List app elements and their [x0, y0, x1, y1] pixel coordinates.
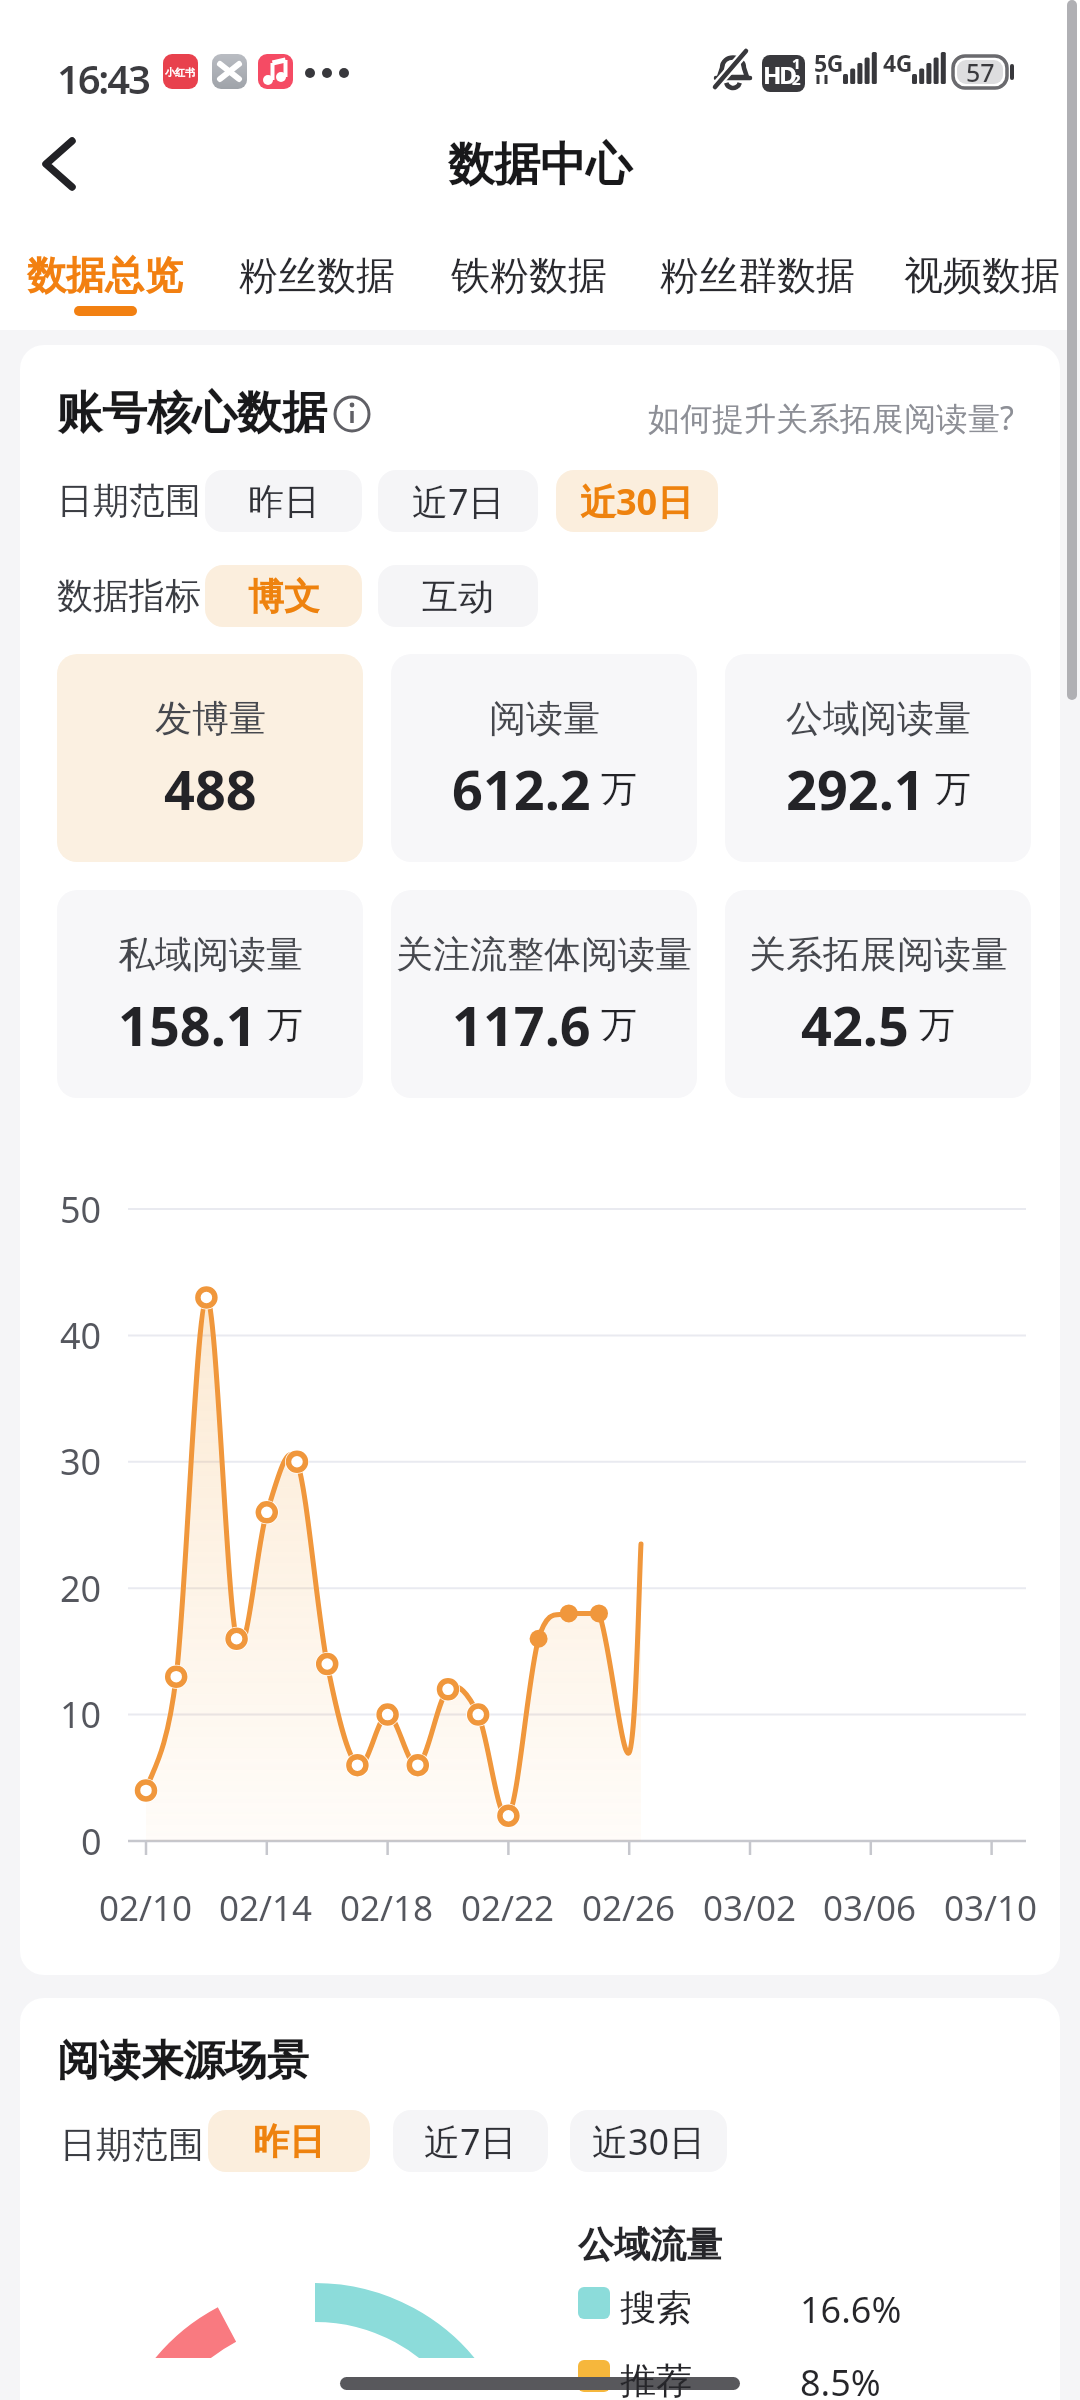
staticText: 粉丝数据 — [239, 251, 395, 300]
button[interactable]: 铁粉数据 — [444, 240, 614, 310]
staticText: 近30日 — [592, 2117, 706, 2166]
staticText: 488 — [164, 752, 257, 824]
staticText: 公域流量 — [578, 2222, 722, 2267]
staticText: 10 — [60, 1690, 102, 1738]
button[interactable]: 近30日 — [556, 470, 718, 532]
staticText: 阅读来源场景 — [57, 2035, 309, 2088]
staticText: 万 — [935, 766, 971, 811]
button[interactable]: 粉丝数据 — [232, 240, 402, 310]
button[interactable]: 关注流整体阅读量 — [391, 890, 697, 1098]
button[interactable]: 关系拓展阅读量 — [725, 890, 1031, 1098]
staticText: 关注流整体阅读量 — [396, 931, 692, 978]
staticText: 搜索 — [620, 2285, 692, 2330]
staticText: 万 — [919, 1002, 955, 1047]
staticText: 昨日 — [248, 479, 320, 524]
staticText: 8.5% — [800, 2358, 881, 2400]
staticText: 阅读量 — [489, 695, 600, 742]
staticText: 20 — [60, 1564, 102, 1612]
button[interactable]: 昨日 — [208, 2110, 370, 2172]
staticText: 117.6 — [452, 988, 591, 1060]
staticText: 公域阅读量 — [786, 695, 971, 742]
button[interactable]: 互动 — [378, 565, 538, 627]
staticText: 日期范围 — [57, 478, 201, 523]
staticText: 如何提升关系拓展阅读量? — [648, 396, 1014, 440]
button[interactable]: 视频数据 — [897, 240, 1067, 310]
staticText: 02/18 — [340, 1884, 434, 1928]
staticText: 数据总览 — [27, 251, 183, 300]
button[interactable]: 近7日 — [378, 470, 538, 532]
staticText: 0 — [81, 1817, 102, 1865]
staticText: 数据中心 — [448, 136, 632, 194]
staticText: 02/14 — [219, 1884, 313, 1928]
staticText: 小红书 — [165, 66, 195, 79]
staticText: 03/10 — [944, 1884, 1038, 1928]
staticText: 博文 — [248, 574, 320, 619]
staticText: 数据指标 — [57, 573, 201, 618]
staticText: 5G — [814, 47, 843, 78]
staticText: 4G — [883, 47, 912, 78]
staticText: 2 — [792, 69, 801, 89]
staticText: 612.2 — [452, 752, 591, 824]
button[interactable]: 昨日 — [205, 470, 362, 532]
staticText: 03/06 — [823, 1884, 917, 1928]
staticText: 万 — [601, 766, 637, 811]
staticText: 30 — [60, 1437, 102, 1485]
staticText: 02/10 — [99, 1884, 193, 1928]
button[interactable]: 近30日 — [570, 2110, 727, 2172]
button[interactable]: 私域阅读量 — [57, 890, 363, 1098]
staticText: 粉丝群数据 — [660, 251, 855, 300]
staticText: 发博量 — [155, 695, 266, 742]
staticText: 视频数据 — [904, 251, 1060, 300]
staticText: 日期范围 — [60, 2122, 204, 2167]
staticText: 03/02 — [703, 1884, 797, 1928]
staticText: 万 — [601, 1002, 637, 1047]
button[interactable]: 阅读量 — [391, 654, 697, 862]
staticText: 02/26 — [582, 1884, 676, 1928]
button[interactable] — [20, 125, 110, 205]
staticText: 账号核心数据 — [57, 385, 327, 442]
staticText: HD — [763, 58, 795, 91]
staticText: 私域阅读量 — [118, 931, 303, 978]
staticText: 近7日 — [412, 477, 505, 526]
staticText: 关系拓展阅读量 — [749, 931, 1008, 978]
staticText: 158.1 — [118, 988, 257, 1060]
staticText: 近30日 — [580, 477, 694, 526]
button[interactable]: 粉丝群数据 — [648, 240, 866, 310]
button[interactable]: 发博量 — [57, 654, 363, 862]
staticText: 292.1 — [786, 752, 925, 824]
staticText: 近7日 — [424, 2117, 517, 2166]
staticText: 02/22 — [461, 1884, 555, 1928]
button[interactable]: 博文 — [205, 565, 362, 627]
staticText: 16.6% — [800, 2285, 902, 2334]
button[interactable]: 公域阅读量 — [725, 654, 1031, 862]
staticText: 16:43 — [57, 51, 149, 105]
button[interactable]: 数据总览 — [20, 240, 190, 310]
staticText: 40 — [60, 1311, 102, 1359]
staticText: 42.5 — [801, 988, 909, 1060]
staticText: 57 — [966, 55, 995, 89]
staticText: 推荐 — [620, 2358, 692, 2400]
staticText: 50 — [60, 1185, 102, 1233]
staticText: 互动 — [422, 574, 494, 619]
staticText: 昨日 — [253, 2119, 325, 2164]
staticText: 1 — [792, 53, 801, 73]
staticText: 铁粉数据 — [451, 251, 607, 300]
staticText: 万 — [267, 1002, 303, 1047]
button[interactable]: 近7日 — [393, 2110, 548, 2172]
